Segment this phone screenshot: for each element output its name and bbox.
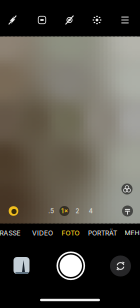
button[interactable]: TRASSE bbox=[0, 226, 22, 240]
button[interactable]: PORTRÄT bbox=[86, 226, 118, 240]
button[interactable]: 4 bbox=[86, 206, 96, 216]
staticText: PORTRÄT bbox=[88, 229, 117, 237]
button[interactable]: MEHR bbox=[123, 226, 140, 240]
staticText: TRASSE bbox=[0, 229, 20, 237]
button[interactable]: Weitere Optionen bbox=[116, 11, 134, 29]
staticText: 1× bbox=[61, 207, 68, 215]
button[interactable]: Apple ProRAW bbox=[33, 11, 51, 29]
button[interactable]: VIDEO bbox=[30, 226, 54, 240]
button[interactable]: Belichtung bbox=[122, 205, 133, 216]
button[interactable]: Live Photo aus bbox=[60, 11, 78, 29]
button[interactable]: Auslöser bbox=[56, 251, 86, 281]
button[interactable]: .5 bbox=[46, 206, 56, 216]
button[interactable]: 2 bbox=[73, 206, 83, 216]
button[interactable]: 1× bbox=[59, 206, 69, 216]
staticText: .5 bbox=[48, 207, 54, 215]
button[interactable]: Blitz aus bbox=[3, 11, 21, 29]
staticText: 2 bbox=[76, 207, 80, 215]
staticText: MEHR bbox=[124, 229, 140, 237]
staticText: FOTO bbox=[61, 229, 79, 237]
button[interactable]: Zuletzt aufgenommenes Foto bbox=[13, 257, 29, 274]
button[interactable]: Live Photo bbox=[88, 11, 106, 29]
button[interactable]: FOTO bbox=[60, 226, 81, 240]
button[interactable]: Nachtmodus bbox=[9, 206, 18, 216]
button[interactable]: Fotografische Stile bbox=[121, 183, 132, 194]
staticText: VIDEO bbox=[32, 229, 53, 237]
button[interactable]: Kamera wechseln bbox=[110, 255, 131, 276]
staticText: 4 bbox=[89, 207, 93, 215]
